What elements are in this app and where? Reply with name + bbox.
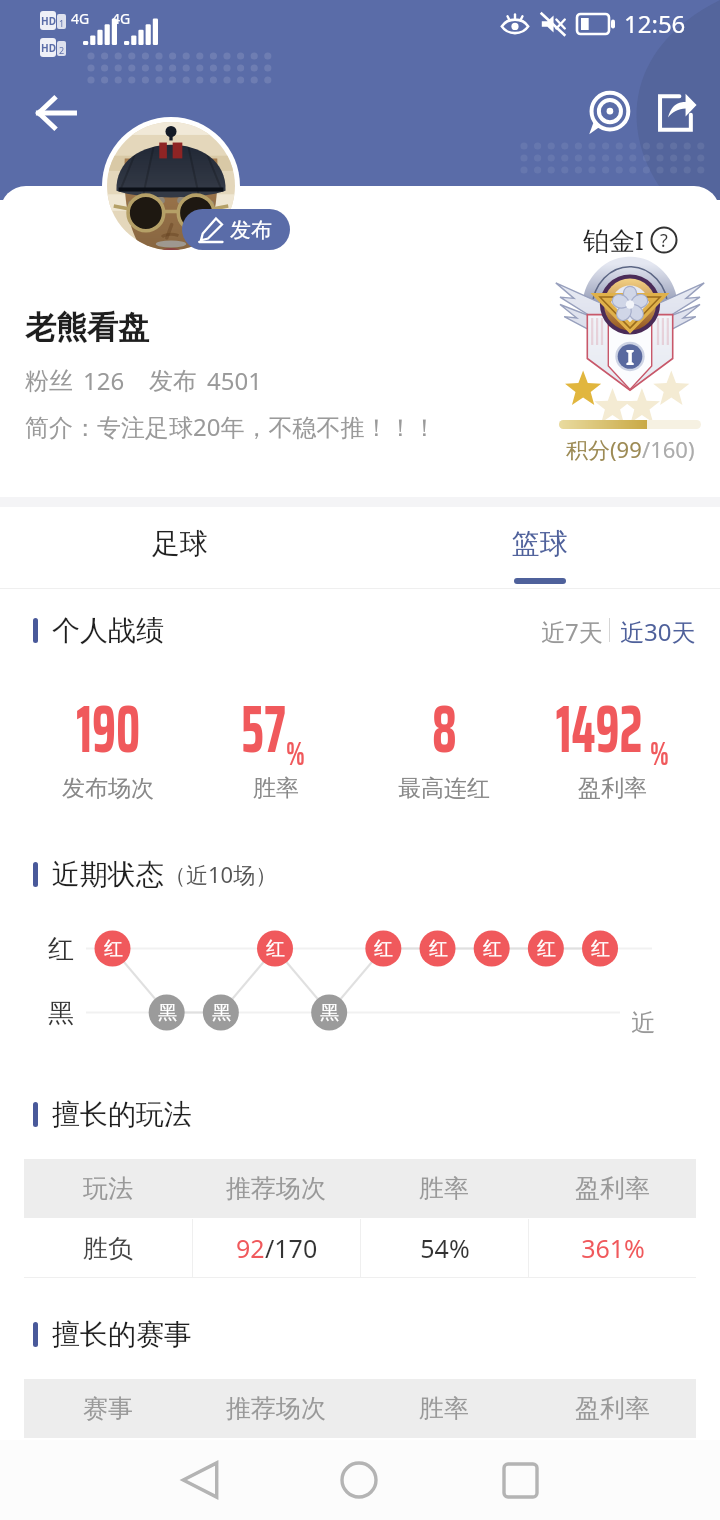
staticText: 红 [266,937,285,961]
button[interactable]: Share [642,82,708,144]
staticText: 个人战绩 [52,613,164,648]
button[interactable]: Message [576,82,642,144]
staticText: 12:56 [624,7,686,40]
button[interactable]: 足球 [0,507,360,589]
staticText: 粉丝 [25,366,73,396]
staticText: 篮球 [512,526,568,561]
staticText: 54% [420,1231,470,1265]
staticText: 4G [112,9,131,28]
staticText: 足球 [152,526,208,561]
staticText: 4501 [207,364,262,397]
staticText: 最高连红 [398,774,490,803]
staticText: HD [41,14,56,28]
staticText: /160) [642,434,695,464]
button[interactable]: 发布 [182,209,290,250]
staticText: 简介：专注足球20年，不稳不推！！！ [25,410,437,443]
staticText: 黑 [320,1001,339,1025]
staticText: 361% [581,1231,645,1265]
staticText: 推荐场次 [226,1173,326,1204]
staticText: 推荐场次 [226,1393,326,1424]
staticText: HD [41,41,56,55]
staticText: % [650,728,669,780]
staticText: 盈利率 [575,1393,650,1424]
button[interactable]: Home [324,1445,394,1515]
button[interactable]: 近7天 [535,611,609,649]
staticText: 92 [236,1231,265,1265]
staticText: 2 [59,44,65,56]
staticText: 擅长的赛事 [52,1317,192,1352]
staticText: 黑 [48,997,74,1030]
staticText: 胜率 [253,774,299,803]
button[interactable]: Back [165,1445,235,1515]
button[interactable]: 铂金I [583,222,678,258]
staticText: 红 [374,937,393,961]
staticText: 4G [71,9,90,28]
staticText: 发布 [149,366,197,396]
staticText: 近7天 [541,615,603,645]
staticText: 近30天 [620,615,696,645]
staticText: 玩法 [83,1173,133,1204]
button[interactable]: 篮球 [360,507,720,589]
button[interactable]: 近30天 [610,611,696,649]
staticText: （近10场） [164,859,278,889]
staticText: 红 [104,937,123,961]
staticText: % [286,728,305,780]
staticText: ? [660,228,668,253]
staticText: 8 [432,676,457,781]
staticText: 积分(99 [566,434,642,464]
staticText: 红 [429,937,448,961]
staticText: 红 [537,937,556,961]
other: Help [650,226,678,254]
staticText: 盈利率 [578,774,647,803]
button[interactable]: Avatar [102,117,240,255]
staticText: 黑 [212,1001,231,1025]
staticText: 126 [83,364,125,397]
staticText: 盈利率 [575,1173,650,1204]
staticText: 胜负 [83,1233,133,1264]
staticText: 1492 [556,676,643,781]
staticText: 红 [483,937,502,961]
staticText: 近期状态 [52,857,164,892]
staticText: I [626,343,635,372]
staticText: 老熊看盘 [25,308,149,347]
staticText: 红 [591,937,610,961]
button[interactable]: Recents [485,1445,555,1515]
staticText: /170 [265,1231,318,1265]
staticText: 擅长的玩法 [52,1097,192,1132]
staticText: 近 [631,1008,655,1038]
staticText: 胜率 [419,1393,469,1424]
staticText: 红 [48,933,74,966]
staticText: 赛事 [83,1393,133,1424]
staticText: 黑 [158,1001,177,1025]
staticText: 57 [241,676,286,781]
staticText: 胜率 [419,1173,469,1204]
staticText: 190 [76,676,141,781]
staticText: 1 [59,17,65,29]
button[interactable]: Back [20,82,92,144]
staticText: 发布场次 [62,774,154,803]
staticText: 发布 [230,217,272,243]
staticText: 铂金I [583,222,644,258]
